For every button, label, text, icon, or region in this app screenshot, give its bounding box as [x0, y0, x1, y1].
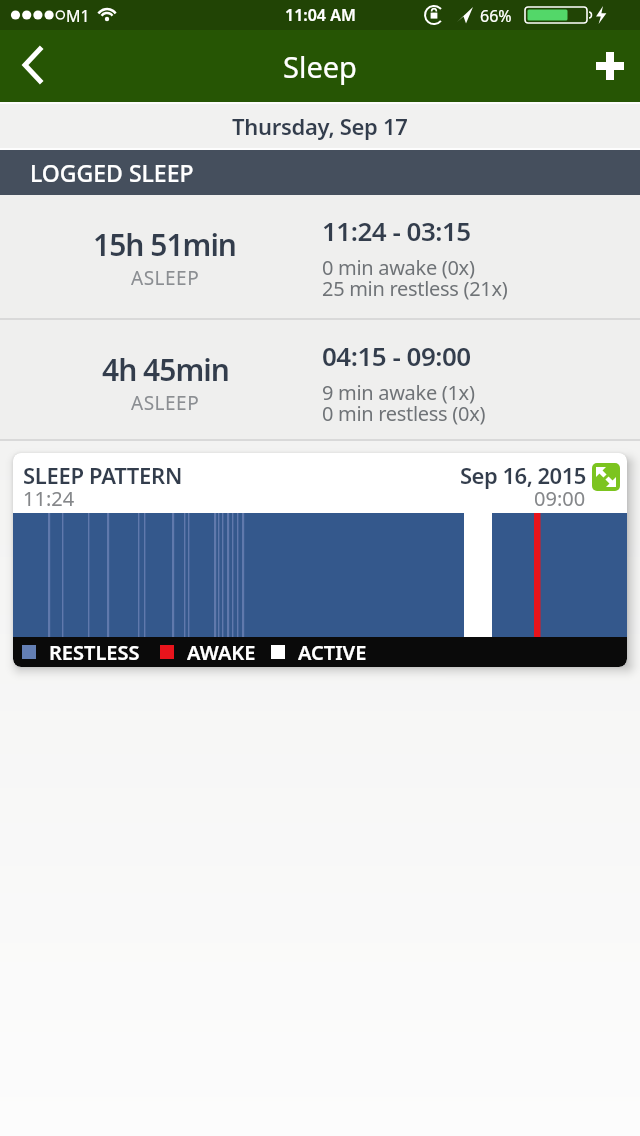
- staticText: ASLEEP: [131, 265, 200, 291]
- button[interactable]: [592, 463, 620, 491]
- staticText: 11:24: [23, 485, 75, 508]
- button[interactable]: [12, 44, 56, 88]
- staticText: 11:24 - 03:15: [322, 213, 471, 248]
- staticText: 09:00: [534, 485, 586, 508]
- staticText: AWAKE: [187, 639, 256, 666]
- button[interactable]: 4h 45min: [0, 320, 640, 439]
- staticText: 0 min awake (0x) 25 min restless (21x): [322, 254, 508, 302]
- staticText: 9 min awake (1x) 0 min restless (0x): [322, 379, 486, 427]
- staticText: 04:15 - 09:00: [322, 338, 471, 373]
- staticText: Thursday, Sep 17: [232, 111, 408, 141]
- staticText: Sep 16, 2015: [460, 460, 586, 490]
- staticText: M1: [66, 5, 90, 27]
- staticText: 4h 45min: [102, 349, 229, 390]
- button[interactable]: 15h 51min: [0, 195, 640, 318]
- staticText: SLEEP PATTERN: [23, 460, 183, 490]
- staticText: Sleep: [283, 47, 357, 86]
- staticText: ASLEEP: [131, 390, 200, 416]
- staticText: 11:04 AM: [285, 4, 356, 26]
- staticText: ACTIVE: [298, 639, 367, 666]
- staticText: LOGGED SLEEP: [30, 157, 194, 188]
- button[interactable]: SLEEP PATTERN: [13, 453, 627, 667]
- staticText: RESTLESS: [49, 639, 140, 666]
- staticText: 15h 51min: [93, 224, 237, 265]
- staticText: 66%: [480, 5, 512, 27]
- button[interactable]: [588, 44, 632, 88]
